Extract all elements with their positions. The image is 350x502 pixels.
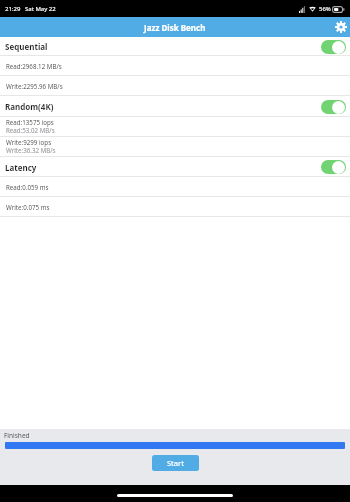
- staticText: Write:0.075 ms: [6, 203, 50, 211]
- staticText: Sat May 22: [25, 5, 56, 13]
- staticText: Write:36.32 MB/s: [6, 146, 56, 154]
- button[interactable]: Write:9299 iops: [0, 137, 350, 157]
- button[interactable]: Settings: [333, 19, 349, 35]
- staticText: Random(4K): [5, 101, 54, 112]
- staticText: Jazz Disk Bench: [144, 22, 206, 33]
- button[interactable]: Latency: [0, 157, 350, 177]
- staticText: Write:9299 iops: [6, 138, 52, 146]
- staticText: Read:0.059 ms: [6, 183, 49, 191]
- staticText: Read:2968.12 MB/s: [6, 62, 62, 70]
- staticText: Read:13575 iops: [6, 118, 54, 126]
- button[interactable]: Write:0.075 ms: [0, 197, 350, 217]
- button[interactable]: Read:2968.12 MB/s: [0, 56, 350, 76]
- button[interactable]: Read:0.059 ms: [0, 177, 350, 197]
- button[interactable]: Toggle Random(4K): [321, 100, 346, 114]
- button[interactable]: Read:13575 iops: [0, 117, 350, 137]
- button[interactable]: Toggle Latency: [321, 160, 346, 174]
- staticText: Latency: [5, 162, 37, 173]
- button[interactable]: Random(4K): [0, 96, 350, 117]
- staticText: Finished: [4, 431, 30, 440]
- button[interactable]: Start: [152, 455, 199, 471]
- staticText: Read:53.02 MB/s: [6, 126, 55, 134]
- staticText: 21:29: [5, 5, 21, 13]
- button[interactable]: Write:2295.96 MB/s: [0, 76, 350, 96]
- staticText: 56%: [319, 5, 331, 13]
- staticText: Write:2295.96 MB/s: [6, 82, 63, 90]
- staticText: Sequential: [5, 41, 48, 52]
- button[interactable]: Sequential: [0, 37, 350, 56]
- button[interactable]: Toggle Sequential: [321, 40, 346, 54]
- staticText: Start: [167, 458, 184, 468]
